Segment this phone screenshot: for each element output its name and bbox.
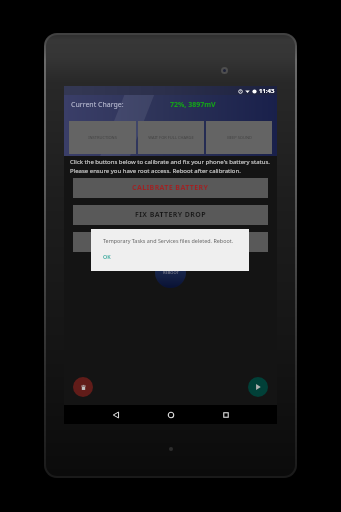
staticText: REBOOT bbox=[163, 270, 179, 275]
button[interactable]: CLEAR TEMP FILES bbox=[73, 232, 268, 252]
staticText: FIX BATTERY DROP bbox=[135, 210, 207, 220]
staticText: BEEP SOUND bbox=[227, 135, 252, 140]
button[interactable]: Delete bbox=[73, 377, 93, 397]
button[interactable]: Play bbox=[248, 377, 268, 397]
staticText: INSTRUCTIONS bbox=[88, 135, 117, 140]
button[interactable]: Home bbox=[161, 405, 180, 424]
staticText: 72%, 3897mV bbox=[170, 100, 216, 110]
button[interactable]: REBOOT bbox=[155, 257, 186, 288]
staticText: Click the buttons below to calibrate and… bbox=[70, 158, 271, 174]
staticText: 11:43 bbox=[259, 87, 275, 95]
staticText: CALIBRATE BATTERY bbox=[132, 183, 209, 193]
button[interactable]: Recent apps bbox=[216, 405, 235, 424]
button[interactable]: FIX BATTERY DROP bbox=[73, 205, 268, 225]
staticText: OK bbox=[103, 253, 111, 260]
button[interactable]: CALIBRATE BATTERY bbox=[73, 178, 268, 198]
button[interactable]: OK bbox=[99, 250, 115, 263]
button[interactable]: Back bbox=[106, 405, 125, 424]
staticText: Temporary Tasks and Services files delet… bbox=[103, 237, 234, 244]
staticText: Current Charge: bbox=[71, 100, 124, 110]
staticText: CLEAR TEMP FILES bbox=[136, 237, 205, 247]
staticText: WAIT FOR FULL CHARGE bbox=[148, 135, 194, 140]
